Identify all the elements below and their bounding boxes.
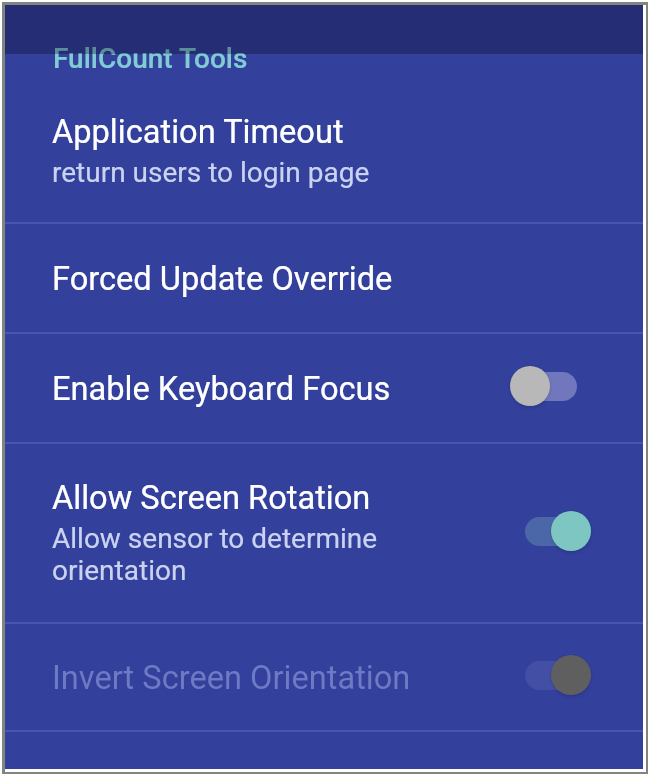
staticText: Allow Screen Rotation bbox=[52, 479, 371, 517]
button[interactable]: Toggle Allow Screen Rotation bbox=[524, 510, 591, 552]
staticText: FullCount Tools bbox=[53, 42, 248, 75]
button[interactable]: Forced Update Override bbox=[5, 224, 643, 332]
staticText: Enable Keyboard Focus bbox=[52, 370, 391, 408]
button[interactable]: Application Timeout bbox=[5, 75, 643, 222]
button[interactable]: Invert Screen Orientation bbox=[5, 624, 643, 730]
button[interactable]: Toggle Invert Screen Orientation bbox=[524, 654, 591, 696]
button[interactable]: Toggle Enable Keyboard Focus bbox=[510, 365, 577, 407]
staticText: return users to login page bbox=[52, 156, 370, 189]
staticText: Invert Screen Orientation bbox=[52, 659, 411, 697]
button[interactable]: Allow Screen Rotation bbox=[5, 444, 643, 622]
staticText: Allow sensor to determine orientation bbox=[52, 522, 452, 587]
button[interactable]: Enable Keyboard Focus bbox=[5, 334, 643, 442]
staticText: Application Timeout bbox=[52, 113, 344, 151]
staticText: Forced Update Override bbox=[52, 260, 393, 298]
